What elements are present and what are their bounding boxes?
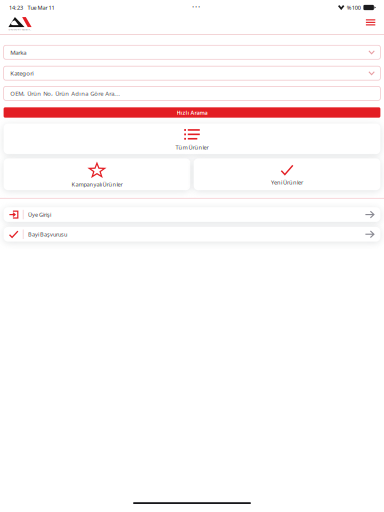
staticText: Tüm Ürünler (175, 143, 208, 151)
staticText: %100 (347, 4, 361, 11)
button[interactable]: Kampanyalı Ürünler (4, 158, 190, 190)
button[interactable]: Bayi Başvurusu (4, 227, 380, 242)
button[interactable]: Tüm Ürünler (4, 123, 380, 154)
staticText: Marka (10, 48, 26, 56)
staticText: 14:23 (9, 4, 23, 11)
staticText: Hızlı Arama (176, 109, 207, 116)
staticText: Bayi Başvurusu (28, 230, 67, 238)
staticText: Üye Girişi (28, 211, 51, 218)
staticText: Yeni Ürünler (271, 178, 303, 186)
button[interactable]: Kategori (4, 66, 380, 80)
button[interactable]: Üye Girişi (4, 207, 380, 222)
staticText: Kategori (10, 69, 34, 77)
staticText: OTOMOTİV YEDEK PARÇA (8, 28, 32, 31)
staticText: OEM, Ürün No, Ürün Adına Göre Ara... (10, 89, 120, 97)
button[interactable]: Hızlı Arama (4, 107, 380, 118)
button[interactable]: Yeni Ürünler (194, 158, 380, 190)
staticText: • • • (192, 4, 200, 11)
button[interactable]: Home (8, 15, 32, 30)
staticText: Kampanyalı Ürünler (71, 180, 122, 188)
button[interactable]: Menu (363, 15, 378, 34)
button[interactable]: Marka (4, 45, 380, 59)
staticText: Tue Mar 11 (27, 4, 54, 11)
